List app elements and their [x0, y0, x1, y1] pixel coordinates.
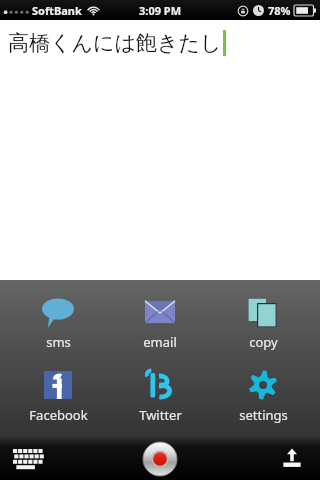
button[interactable]: Record — [141, 440, 179, 478]
staticText: sms — [46, 333, 71, 351]
staticText: copy — [249, 333, 278, 351]
staticText: Twitter — [139, 406, 182, 424]
other: Email — [145, 297, 175, 327]
staticText: 高橋くんには飽きたし — [8, 30, 222, 56]
button[interactable]: Email — [115, 292, 205, 353]
other: SMS — [41, 295, 75, 329]
button[interactable]: Keyboard — [8, 439, 48, 479]
button[interactable]: 高橋くんには飽きたし — [0, 20, 320, 280]
button[interactable]: Settings — [218, 365, 308, 426]
button[interactable]: Facebook — [13, 365, 103, 426]
other: Twitter — [145, 370, 175, 400]
staticText: Facebook — [29, 406, 88, 424]
button[interactable]: SMS — [13, 292, 103, 353]
other: Settings — [248, 370, 278, 400]
staticText: settings — [239, 406, 288, 424]
button[interactable]: Twitter — [115, 365, 205, 426]
other: Copy — [248, 297, 278, 327]
staticText: SoftBank — [32, 3, 82, 18]
staticText: 78% — [268, 3, 291, 18]
staticText: 3:09 PM — [139, 3, 182, 18]
button[interactable]: Copy — [218, 292, 308, 353]
button[interactable]: Share — [272, 439, 312, 479]
other: Facebook — [44, 371, 72, 399]
staticText: email — [143, 333, 177, 351]
